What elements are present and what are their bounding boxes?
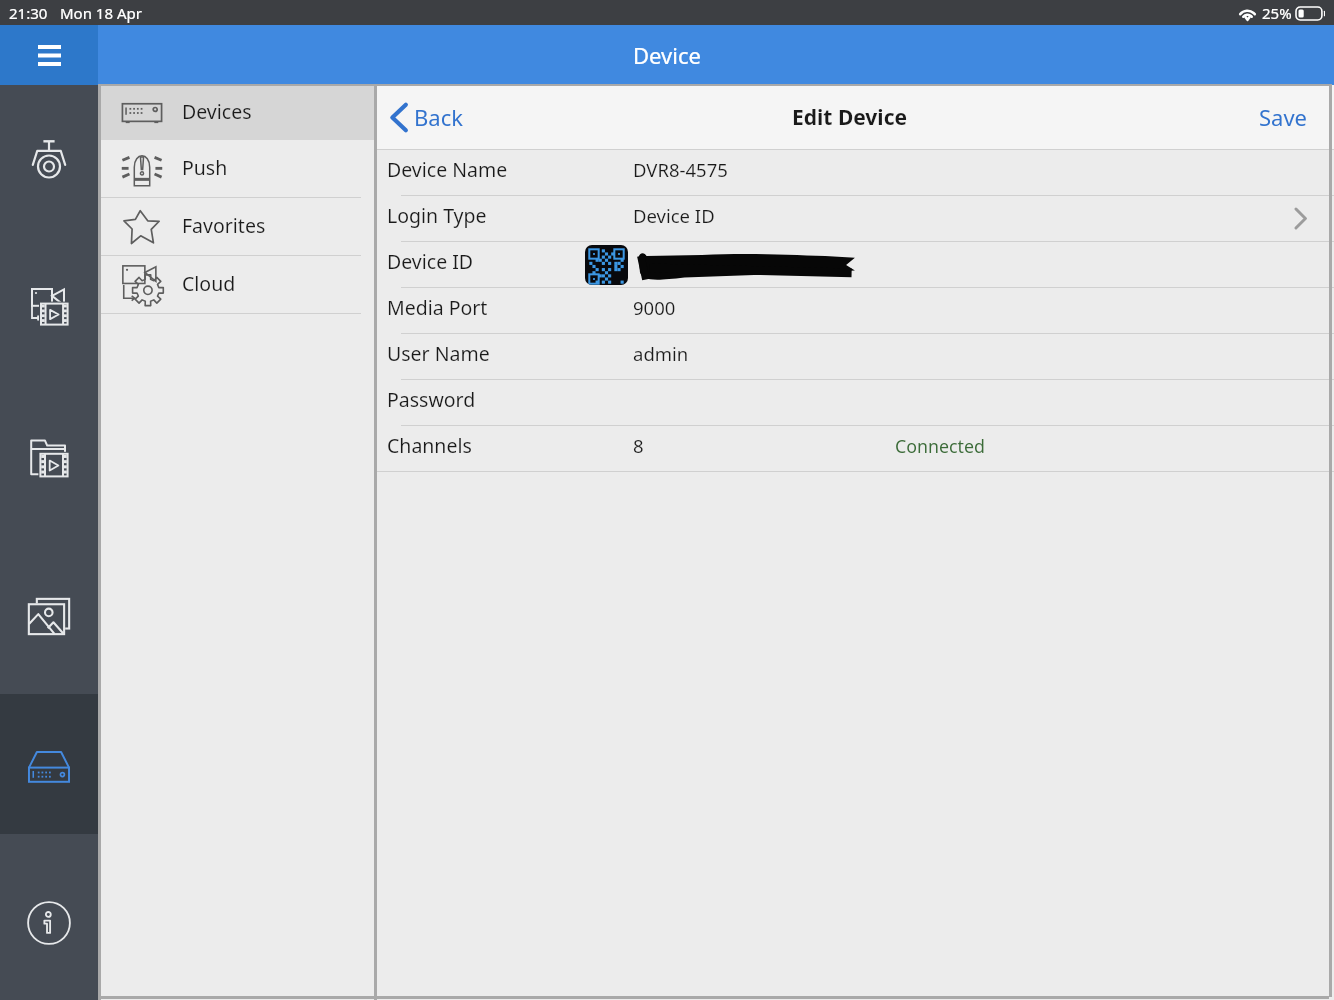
button[interactable]: User Name <box>377 334 1334 379</box>
button[interactable]: Save <box>1233 94 1334 140</box>
button[interactable]: Login Type <box>377 196 1334 241</box>
button[interactable]: Menu <box>0 25 98 85</box>
button[interactable]: Password <box>377 380 1334 425</box>
staticText: Favorites <box>182 212 266 239</box>
staticText: DVR8-4575 <box>633 157 728 182</box>
button[interactable]: Info <box>0 851 98 995</box>
staticText: Push <box>182 154 228 181</box>
button[interactable]: Pictures <box>0 544 98 688</box>
button[interactable]: Push <box>101 140 374 197</box>
staticText: User Name <box>387 340 490 367</box>
staticText: 8 <box>633 433 644 458</box>
staticText: 21:30 <box>9 3 48 23</box>
staticText: Media Port <box>387 294 488 321</box>
staticText: Device ID <box>387 248 474 275</box>
staticText: Channels <box>387 432 472 459</box>
staticText: Connected <box>895 434 985 458</box>
staticText: Back <box>414 102 463 132</box>
staticText: admin <box>633 341 689 366</box>
staticText: 9000 <box>633 295 676 320</box>
staticText: Mon 18 Apr <box>60 3 142 23</box>
button[interactable]: Devices <box>101 85 374 140</box>
staticText: Device <box>633 40 701 70</box>
button[interactable]: Channels <box>377 426 1334 471</box>
button[interactable]: Device ID <box>377 242 1334 287</box>
staticText: Devices <box>182 98 252 125</box>
staticText: Login Type <box>387 202 487 229</box>
button[interactable]: Cloud <box>101 256 374 313</box>
staticText: Edit Device <box>792 103 908 132</box>
staticText: Cloud <box>182 270 236 297</box>
staticText: Password <box>387 386 476 413</box>
button[interactable]: Scan QR code <box>585 245 628 285</box>
button[interactable]: Media Port <box>377 288 1334 333</box>
button[interactable]: Live view <box>0 88 98 232</box>
button[interactable]: Device <box>0 694 98 834</box>
button[interactable]: Favorites <box>101 198 374 255</box>
staticText: Device ID <box>633 203 715 228</box>
button[interactable]: Remote playback <box>0 234 98 378</box>
staticText: 25% <box>1262 3 1292 23</box>
staticText: Save <box>1259 102 1308 132</box>
staticText: Device Name <box>387 156 508 183</box>
button[interactable]: Back <box>377 102 473 132</box>
button[interactable]: Local files <box>0 385 98 529</box>
button[interactable]: Device Name <box>377 150 1334 195</box>
